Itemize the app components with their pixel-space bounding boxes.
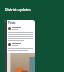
button[interactable]: District updates: [5, 7, 31, 12]
staticText: Posts: [8, 21, 16, 25]
button[interactable]: Posts: [4, 20, 35, 72]
